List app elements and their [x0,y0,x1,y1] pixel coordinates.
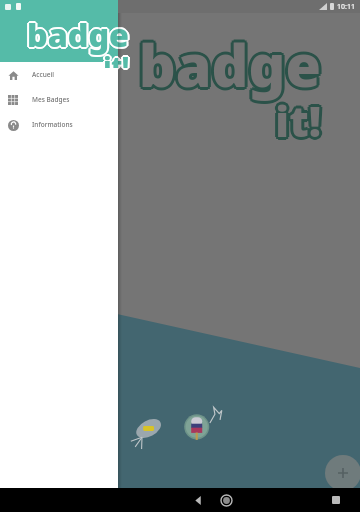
staticText: badge [136,26,319,104]
staticText: it! [103,51,129,69]
button[interactable]: Add badge [325,455,360,491]
staticText: it! [103,48,129,66]
staticText: it! [105,50,131,68]
staticText: badge [27,12,130,56]
staticText: it! [275,90,321,148]
staticText: it! [102,49,128,67]
staticText: it! [272,92,318,150]
button[interactable]: Informations [0,112,118,137]
staticText: badge [26,15,129,59]
button[interactable]: Accueil [0,62,118,87]
staticText: it! [104,49,130,67]
staticText: it! [102,51,128,69]
staticText: badge [25,13,128,57]
button[interactable]: Recent apps [326,490,346,510]
staticText: Informations [32,120,73,129]
staticText: Mes Badges [32,95,70,104]
staticText: Accueil [32,70,54,79]
button[interactable]: Mes Badges [0,87,118,112]
staticText: it! [275,92,321,150]
staticText: it! [102,50,128,68]
button[interactable]: Badge [133,415,163,445]
staticText: it! [275,95,321,153]
button[interactable]: Home [46,488,360,512]
staticText: it! [104,51,130,69]
staticText: 10:11 [337,2,355,12]
staticText: it! [277,90,323,148]
staticText: badge [28,13,131,57]
staticText: badge [140,26,323,104]
staticText: badge [26,12,129,56]
staticText: badge [140,24,323,102]
staticText: badge [138,26,321,104]
staticText: badge [26,13,129,57]
staticText: it! [273,92,319,150]
staticText: badge [24,13,127,57]
staticText: it! [103,49,129,67]
staticText: badge [138,28,321,106]
staticText: badge [136,28,319,106]
staticText: it! [104,50,130,68]
staticText: badge [25,14,128,58]
staticText: badge [138,24,321,102]
staticText: badge [135,26,318,104]
staticText: it! [275,89,321,147]
staticText: badge [136,24,319,102]
staticText: it! [275,94,321,152]
button[interactable]: Back [18,488,360,512]
staticText: it! [273,90,319,148]
staticText: it! [277,94,323,152]
staticText: it! [101,50,127,68]
staticText: it! [103,52,129,70]
staticText: badge [27,13,130,57]
staticText: badge [138,23,321,101]
staticText: it! [277,92,323,150]
staticText: it! [103,50,129,68]
staticText: it! [273,94,319,152]
staticText: badge [25,12,128,56]
staticText: badge [141,26,324,104]
button[interactable]: Badge [180,407,218,445]
staticText: badge [140,28,323,106]
staticText: badge [26,11,129,55]
staticText: badge [27,14,130,58]
staticText: it! [278,92,324,150]
staticText: badge [26,14,129,58]
staticText: badge [138,29,321,107]
